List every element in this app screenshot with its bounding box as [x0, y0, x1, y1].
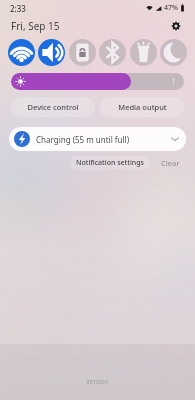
button[interactable]: Settings	[168, 18, 184, 34]
staticText: Device control	[27, 102, 79, 112]
staticText: Media output	[118, 102, 167, 112]
button[interactable]: Device control	[11, 97, 95, 117]
staticText: Verizon	[86, 377, 109, 386]
button[interactable]: Dark mode	[160, 39, 187, 66]
button[interactable]: Bluetooth	[99, 39, 126, 66]
button[interactable]: Wi-Fi	[8, 39, 35, 66]
button[interactable]: Brightness	[11, 73, 184, 90]
button[interactable]: Auto rotate	[69, 39, 96, 66]
button[interactable]: Sound	[38, 39, 65, 66]
button[interactable]: Flashlight	[130, 39, 157, 66]
staticText: Clear	[161, 158, 180, 168]
button[interactable]: Notification settings	[70, 156, 150, 170]
staticText: 47%	[164, 3, 178, 13]
button[interactable]: Media output	[100, 97, 184, 117]
button[interactable]: Charging (55 m until full)	[9, 127, 186, 151]
button[interactable]: Clear	[159, 156, 182, 170]
staticText: Charging (55 m until full)	[36, 134, 130, 145]
staticText: Notification settings	[76, 158, 144, 168]
staticText: Fri, Sep 15	[11, 19, 60, 33]
staticText: 2:33	[10, 3, 26, 14]
